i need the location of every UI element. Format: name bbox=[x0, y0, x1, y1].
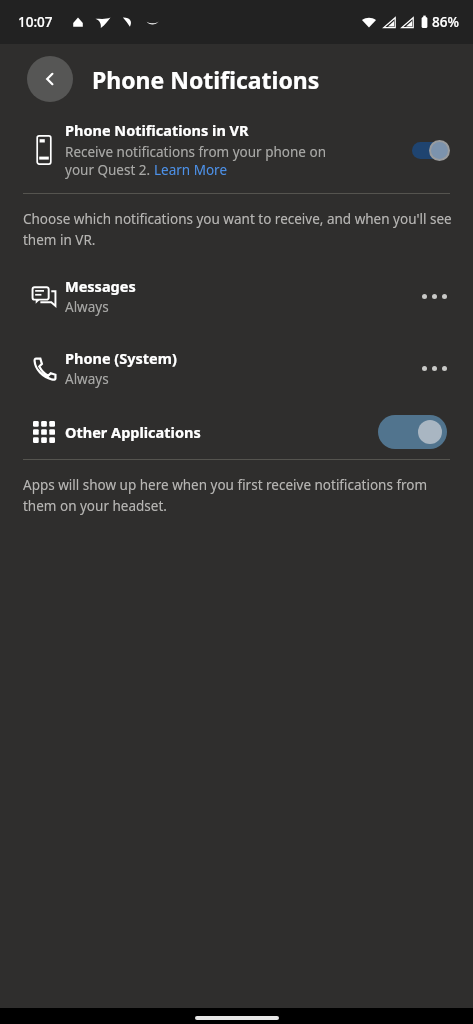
button[interactable]: More options for Messages bbox=[411, 273, 457, 319]
staticText: Messages bbox=[65, 276, 136, 296]
staticText: Apps will show up here when you first re… bbox=[23, 476, 461, 515]
staticText: Receive notifications from your phone on bbox=[65, 143, 326, 161]
button[interactable]: Other Applications toggle bbox=[378, 415, 447, 449]
button[interactable]: Learn More bbox=[154, 161, 228, 179]
button[interactable]: Phone Notifications in VR bbox=[0, 114, 473, 185]
button[interactable]: Back bbox=[27, 56, 73, 102]
button[interactable]: Messages bbox=[0, 271, 473, 321]
button[interactable] bbox=[411, 135, 457, 165]
staticText: 10:07 bbox=[18, 13, 53, 31]
staticText: Always bbox=[65, 370, 109, 388]
staticText: 86% bbox=[432, 13, 459, 31]
staticText: your Quest 2. bbox=[65, 161, 154, 179]
staticText: Always bbox=[65, 298, 109, 316]
staticText: Learn More bbox=[154, 161, 228, 179]
staticText: Phone (System) bbox=[65, 348, 177, 368]
staticText: Other Applications bbox=[65, 422, 378, 442]
button[interactable]: More options for Phone (System) bbox=[411, 345, 457, 391]
button[interactable]: Phone (System) bbox=[0, 343, 473, 393]
staticText: Choose which notifications you want to r… bbox=[23, 210, 461, 249]
staticText: Phone Notifications in VR bbox=[65, 120, 249, 140]
button[interactable]: Other Applications bbox=[0, 415, 473, 449]
staticText: Phone Notifications bbox=[92, 64, 320, 95]
